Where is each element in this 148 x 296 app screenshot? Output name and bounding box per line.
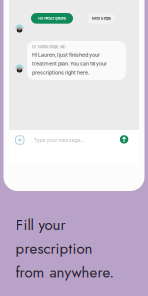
button[interactable]: Fill Prescriptions [31,13,73,24]
staticText: Hi Lauren, I just finished your [32,52,100,58]
button[interactable]: Add attachment [15,135,24,144]
staticText: Next Steps [92,16,111,21]
staticText: Dr. Neeru Singh, MD [32,45,66,49]
staticText: Fill your [15,214,65,236]
button[interactable]: Next Steps [87,13,115,24]
staticText: Type your message... [34,137,84,143]
staticText: prescription [15,238,92,259]
staticText: prescriptions right here. [32,69,89,76]
staticText: treatment plan. You can fill your [32,60,107,67]
staticText: Fill Prescriptions [38,16,66,21]
staticText: from anywhere. [15,261,114,283]
button[interactable]: Send [120,135,129,144]
